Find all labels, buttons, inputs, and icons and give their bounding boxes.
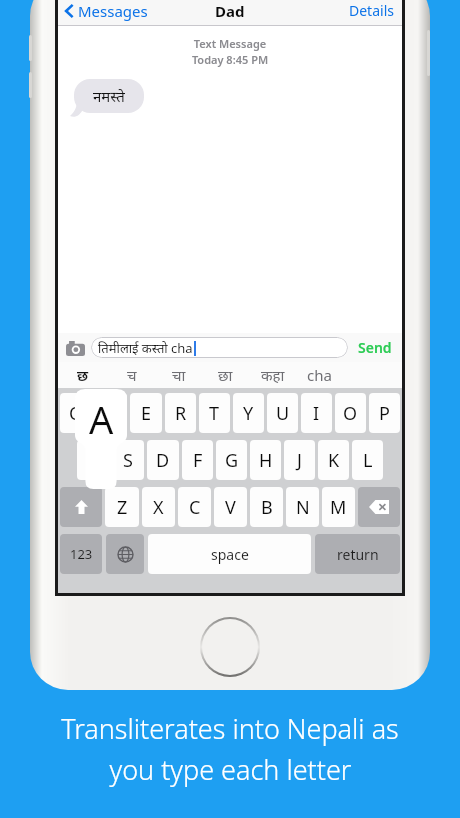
button[interactable]: Z <box>105 487 139 527</box>
button[interactable]: Details <box>341 0 402 24</box>
button[interactable]: F <box>182 440 213 480</box>
button[interactable]: कहा <box>249 362 296 388</box>
staticText: Today 8:45 PM <box>58 52 402 67</box>
button[interactable]: return <box>315 534 400 574</box>
staticText: Transliterates into Nepali as <box>61 710 399 747</box>
button[interactable]: M <box>322 487 355 527</box>
staticText: O <box>343 401 358 426</box>
button[interactable]: च <box>108 362 155 388</box>
button[interactable]: Messages <box>63 0 150 24</box>
staticText: R <box>175 401 187 426</box>
staticText: A <box>89 393 114 445</box>
staticText: Messages <box>78 1 148 21</box>
staticText: F <box>193 448 203 473</box>
button[interactable]: Shift <box>60 487 102 527</box>
button[interactable]: Home <box>202 619 258 675</box>
staticText: G <box>225 448 239 473</box>
button[interactable]: J <box>284 440 315 480</box>
button[interactable]: D <box>147 440 179 480</box>
staticText: H <box>259 448 273 473</box>
staticText: L <box>363 448 373 473</box>
staticText: return <box>337 545 379 564</box>
staticText: Q <box>69 401 84 426</box>
button[interactable]: Delete <box>358 487 400 527</box>
staticText: N <box>296 495 310 520</box>
button[interactable]: Y <box>233 393 264 433</box>
button[interactable]: छ <box>58 362 108 388</box>
staticText: Text Message <box>58 36 402 51</box>
button[interactable]: space <box>148 534 311 574</box>
button[interactable]: B <box>250 487 283 527</box>
button[interactable]: O <box>335 393 366 433</box>
staticText: Y <box>243 401 254 426</box>
button[interactable]: चा <box>155 362 202 388</box>
staticText: P <box>379 401 390 426</box>
staticText: चा <box>172 365 186 385</box>
button[interactable]: U <box>267 393 298 433</box>
staticText: च <box>127 365 137 385</box>
button[interactable]: P <box>369 393 400 433</box>
staticText: cha <box>307 365 332 385</box>
button[interactable]: K <box>318 440 349 480</box>
button[interactable]: Change keyboard <box>106 534 144 574</box>
staticText: you type each letter <box>109 751 352 788</box>
button[interactable]: S <box>112 440 144 480</box>
staticText: space <box>211 545 249 564</box>
button[interactable]: Camera <box>64 337 86 359</box>
staticText: M <box>330 495 347 520</box>
staticText: V <box>225 495 236 520</box>
staticText: D <box>156 448 170 473</box>
button[interactable]: C <box>178 487 211 527</box>
staticText: S <box>123 448 133 473</box>
button[interactable]: छा <box>202 362 249 388</box>
staticText: Dad <box>215 1 245 21</box>
button[interactable]: V <box>214 487 247 527</box>
staticText: J <box>297 448 302 473</box>
staticText: K <box>328 448 340 473</box>
staticText: नमस्ते <box>93 86 125 106</box>
staticText: तिमीलाई कस्तो cha <box>98 339 193 357</box>
button[interactable]: cha <box>296 362 343 388</box>
button[interactable]: Send <box>354 334 396 361</box>
button[interactable]: T <box>199 393 230 433</box>
staticText: छा <box>218 365 233 385</box>
staticText: T <box>209 401 220 426</box>
staticText: B <box>261 495 273 520</box>
staticText: X <box>153 495 164 520</box>
button[interactable]: Q <box>60 393 92 433</box>
button[interactable]: N <box>286 487 319 527</box>
button[interactable]: 123 <box>60 534 102 574</box>
button[interactable]: X <box>142 487 175 527</box>
button[interactable]: I <box>301 393 332 433</box>
staticText: छ <box>77 365 89 385</box>
staticText: I <box>313 401 320 426</box>
button[interactable]: W <box>95 393 127 433</box>
button[interactable]: G <box>216 440 247 480</box>
staticText: कहा <box>261 365 285 385</box>
button[interactable]: तिमीलाई कस्तो cha <box>91 337 348 358</box>
button[interactable]: R <box>165 393 196 433</box>
staticText: 123 <box>70 545 93 563</box>
button[interactable]: H <box>250 440 281 480</box>
staticText: U <box>276 401 290 426</box>
button[interactable]: L <box>352 440 383 480</box>
staticText: C <box>189 495 201 520</box>
staticText: E <box>141 401 152 426</box>
staticText: W <box>103 401 120 426</box>
button[interactable]: E <box>130 393 162 433</box>
staticText: Z <box>117 495 128 520</box>
